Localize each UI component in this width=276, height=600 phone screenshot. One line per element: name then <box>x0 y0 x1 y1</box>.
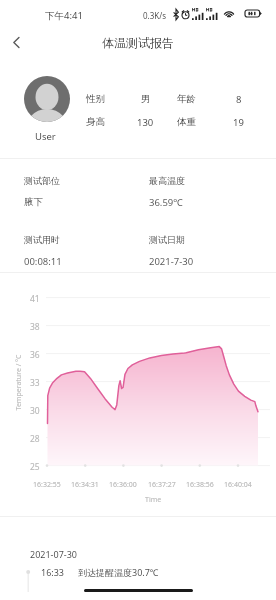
staticText: 38 <box>30 321 40 333</box>
staticText: 30 <box>30 405 40 417</box>
staticText: User <box>35 130 56 143</box>
staticText: 到达提醒温度30.7℃ <box>78 566 159 578</box>
staticText: 2021-7-30 <box>149 255 194 268</box>
staticText: 16:33 <box>41 566 65 578</box>
staticText: 性别 <box>86 93 105 105</box>
staticText: 16:37:27 <box>148 480 176 490</box>
staticText: 测试日期 <box>149 234 185 245</box>
staticText: 测试部位 <box>24 175 60 186</box>
staticText: 16:36:00 <box>109 480 137 490</box>
staticText: 体温测试报告 <box>102 35 174 50</box>
staticText: 年龄 <box>177 93 196 105</box>
staticText: 测试用时 <box>24 234 60 245</box>
staticText: 36 <box>30 349 40 361</box>
staticText: Temperature / °C <box>13 353 23 410</box>
button[interactable]: Back <box>0 27 32 57</box>
staticText: 下午4:41 <box>45 9 83 22</box>
staticText: 16:40:04 <box>224 480 252 490</box>
staticText: 2021-07-30 <box>30 548 77 560</box>
staticText: 最高温度 <box>149 175 185 186</box>
staticText: 16:38:56 <box>186 480 214 490</box>
staticText: 腋下 <box>24 196 43 208</box>
staticText: 36.59℃ <box>149 196 183 209</box>
staticText: 19 <box>233 116 244 129</box>
staticText: 28 <box>30 433 40 445</box>
staticText: 体重 <box>177 116 196 128</box>
staticText: 0.3K/s <box>143 10 167 21</box>
staticText: 男 <box>141 93 151 105</box>
staticText: 130 <box>137 116 154 129</box>
staticText: 16:32:55 <box>33 480 61 490</box>
staticText: 41 <box>30 293 40 305</box>
staticText: 8 <box>236 93 242 106</box>
staticText: 33 <box>30 377 40 389</box>
staticText: 身高 <box>86 116 105 128</box>
staticText: Time <box>145 495 162 505</box>
staticText: 25 <box>30 461 40 473</box>
staticText: 16:34:31 <box>71 480 99 490</box>
staticText: 00:08:11 <box>24 255 62 268</box>
